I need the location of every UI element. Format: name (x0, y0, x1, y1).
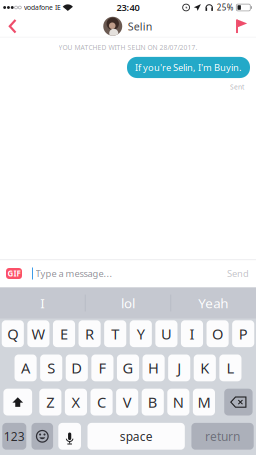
staticText: lol (121, 294, 135, 312)
button[interactable]: space (87, 423, 185, 450)
button[interactable]: A (15, 354, 37, 381)
button[interactable]: Delete (224, 389, 253, 415)
staticText: Selin (128, 19, 153, 33)
staticText: vodafone IE (24, 3, 61, 12)
button[interactable]: Selin (97, 16, 159, 37)
staticText: space (120, 428, 153, 444)
button[interactable]: V (116, 389, 138, 415)
staticText: I (189, 324, 194, 343)
staticText: Q (7, 324, 18, 343)
button[interactable]: Yeah (171, 287, 256, 318)
button[interactable]: N (167, 389, 189, 415)
button[interactable]: E (53, 320, 75, 347)
button[interactable]: J (168, 354, 190, 381)
staticText: J (177, 358, 181, 378)
staticText: I (40, 294, 45, 312)
button[interactable]: X (65, 389, 87, 415)
button[interactable]: H (143, 354, 165, 381)
button[interactable]: D (66, 354, 88, 381)
button[interactable]: L (219, 354, 241, 381)
button[interactable]: Q (2, 320, 24, 347)
staticText: Sent (230, 82, 244, 91)
button[interactable]: lol (85, 287, 171, 318)
staticText: H (148, 358, 159, 378)
staticText: V (123, 392, 132, 412)
button[interactable]: C (90, 389, 113, 415)
staticText: F (98, 358, 106, 378)
button[interactable]: Back (0, 15, 26, 37)
button[interactable]: return (191, 423, 254, 450)
staticText: W (31, 324, 45, 343)
staticText: O (212, 324, 223, 343)
button[interactable]: 123 (2, 423, 26, 450)
staticText: E (60, 324, 68, 343)
button[interactable]: O (207, 320, 229, 347)
button[interactable]: Send (225, 263, 251, 284)
button[interactable]: Emoji (31, 423, 53, 450)
button[interactable]: P (232, 320, 254, 347)
button[interactable]: Send a GIF (6, 268, 22, 279)
button[interactable]: G (117, 354, 139, 381)
button[interactable]: I (181, 320, 203, 347)
staticText: S (47, 358, 55, 378)
staticText: Type a message... (35, 267, 112, 280)
button[interactable]: F (91, 354, 113, 381)
button[interactable]: I (0, 287, 85, 318)
button[interactable]: T (104, 320, 126, 347)
button[interactable]: Shift (3, 389, 32, 415)
staticText: Z (46, 392, 54, 412)
staticText: return (205, 428, 240, 444)
button[interactable]: Z (39, 389, 61, 415)
staticText: 25% (217, 2, 234, 13)
staticText: G (122, 358, 133, 378)
staticText: P (239, 324, 248, 343)
button[interactable]: Y (130, 320, 152, 347)
staticText: 123 (4, 428, 25, 444)
staticText: T (111, 324, 119, 343)
staticText: GIF (7, 268, 20, 279)
staticText: X (71, 392, 80, 412)
staticText: 23:40 (116, 1, 139, 14)
staticText: Yeah (198, 294, 228, 312)
staticText: R (85, 324, 94, 343)
staticText: Y (137, 324, 145, 343)
staticText: M (197, 392, 210, 412)
button[interactable]: U (155, 320, 177, 347)
staticText: L (226, 358, 234, 378)
button[interactable]: S (40, 354, 62, 381)
staticText: K (200, 358, 209, 378)
staticText: N (173, 392, 184, 412)
button[interactable]: K (194, 354, 216, 381)
staticText: Send (227, 267, 249, 280)
button[interactable]: W (27, 320, 49, 347)
button[interactable]: R (79, 320, 101, 347)
staticText: YOU MATCHED WITH SELIN ON 28/07/2017. (58, 43, 197, 52)
staticText: U (161, 324, 172, 343)
staticText: D (71, 358, 82, 378)
button[interactable]: M (193, 389, 215, 415)
staticText: B (148, 392, 158, 412)
button[interactable]: B (142, 389, 164, 415)
staticText: A (21, 358, 30, 378)
button[interactable]: Dictate (58, 423, 81, 450)
staticText: C (97, 392, 106, 412)
button[interactable]: Report (227, 15, 256, 37)
staticText: If you're Selin, I'm Buyin. (135, 61, 242, 74)
